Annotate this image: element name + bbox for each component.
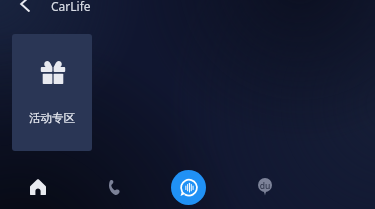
button[interactable]: Back: [9, 0, 33, 12]
button[interactable]: Voice assistant: [160, 165, 216, 209]
staticText: du: [258, 180, 272, 192]
staticText: CarLife: [51, 0, 91, 14]
button[interactable]: Baidu Map: [237, 165, 293, 209]
button[interactable]: Phone: [86, 165, 142, 209]
button[interactable]: Home: [10, 165, 66, 209]
staticText: 活动专区: [12, 111, 92, 125]
button[interactable]: 活动专区: [12, 34, 92, 151]
